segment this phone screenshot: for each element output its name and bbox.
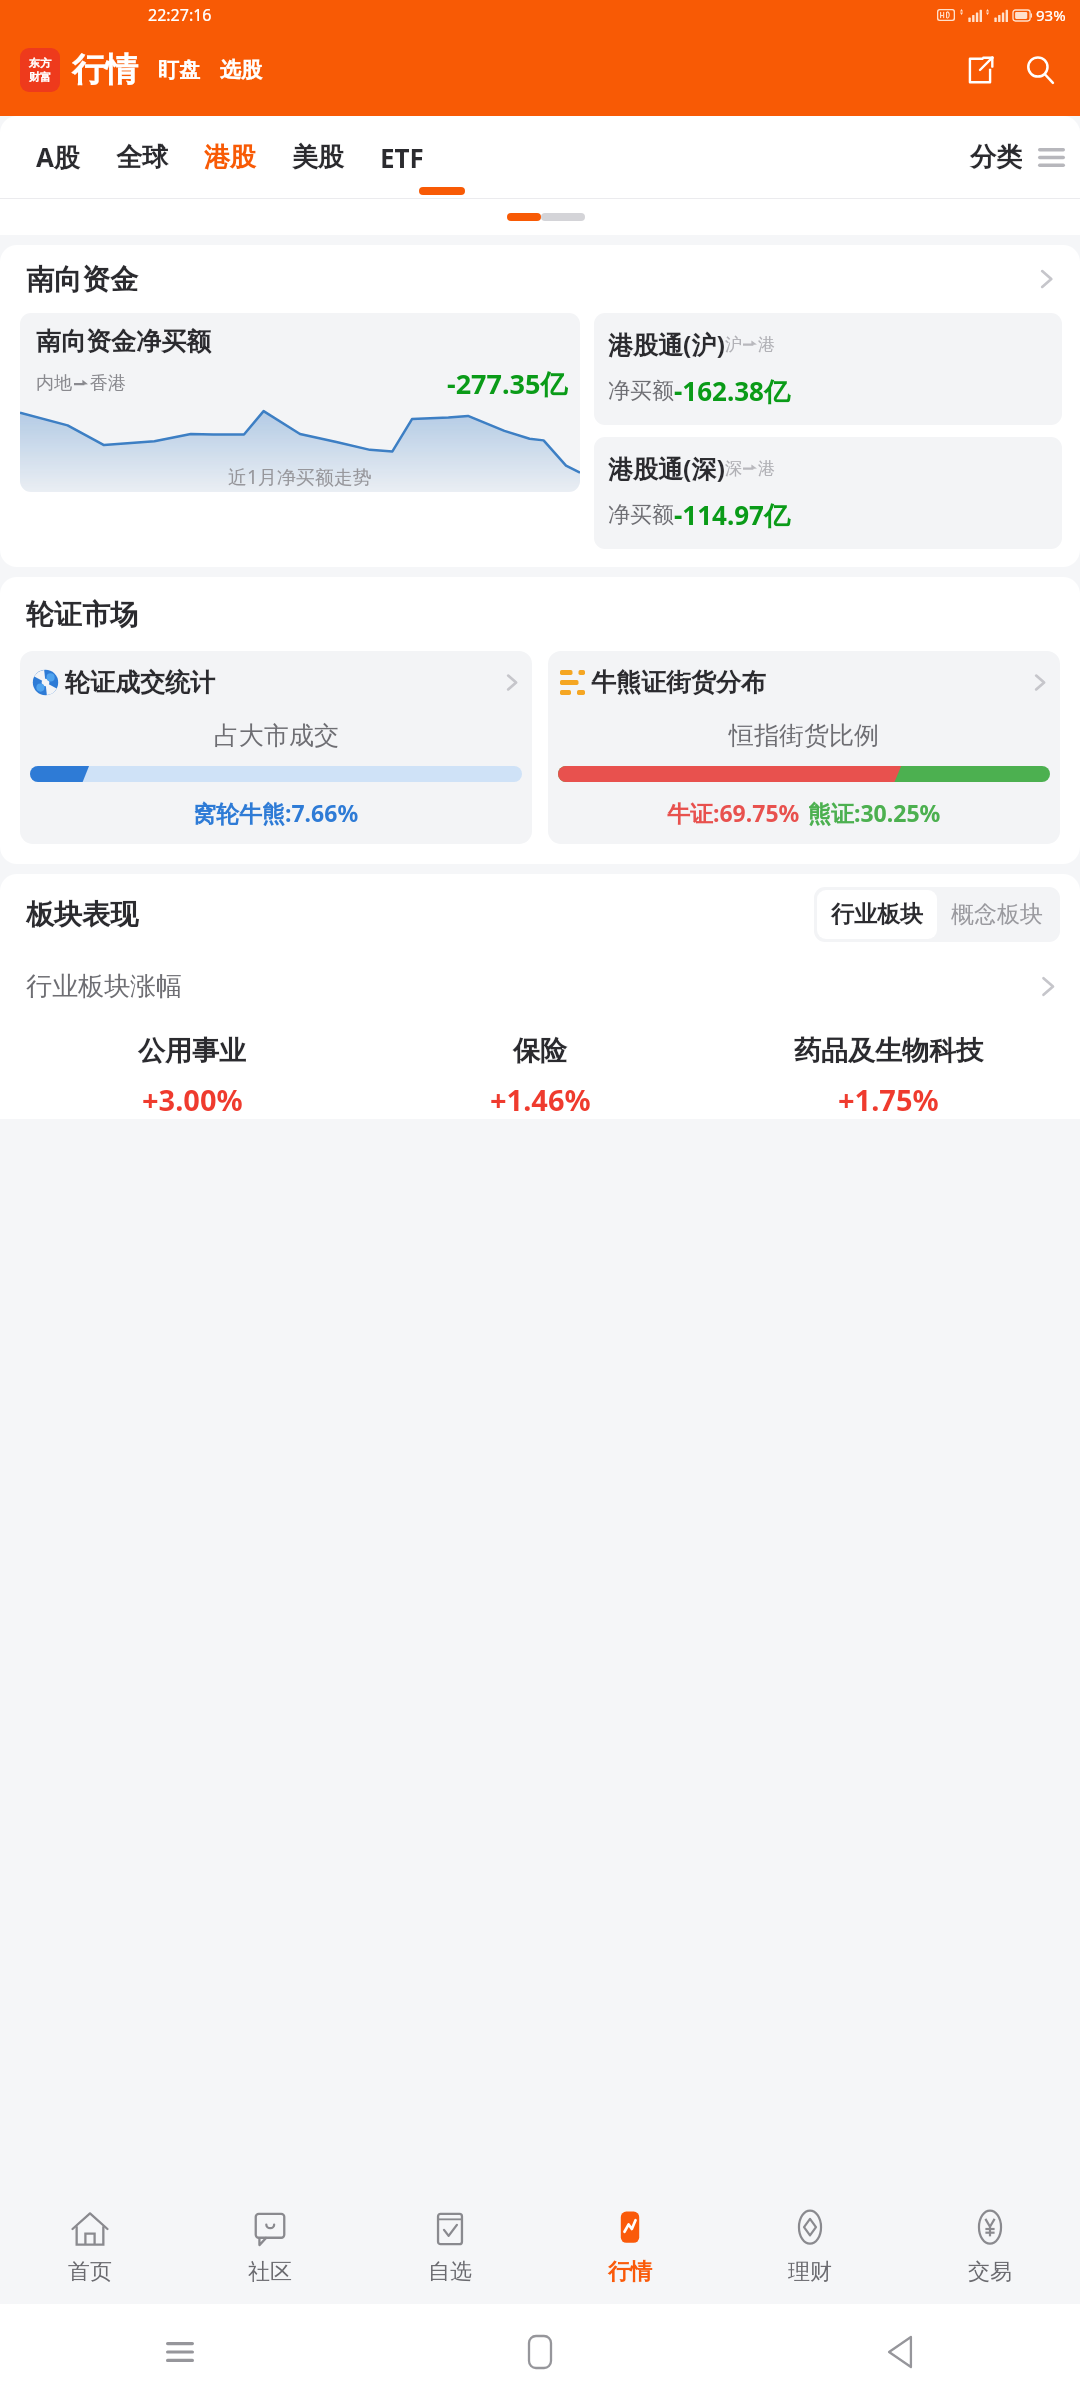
staticText: 南向资金: [26, 262, 138, 297]
staticText: -277.35亿: [447, 365, 568, 402]
staticText: +1.46%: [490, 1080, 591, 1119]
staticText: 南向资金净买额: [36, 326, 211, 357]
button[interactable]: 东方: [20, 48, 60, 92]
staticText: 轮证市场: [26, 597, 138, 632]
staticText: 占大市成交: [214, 720, 339, 751]
staticText: 行情: [72, 49, 138, 91]
staticText: 内地: [36, 372, 72, 395]
button[interactable]: 港股: [204, 141, 256, 174]
staticText: ETF: [380, 140, 424, 175]
staticText: 港股: [204, 141, 256, 174]
staticText: 板块表现: [26, 897, 138, 932]
button[interactable]: A股: [36, 139, 80, 175]
staticText: 分类: [970, 141, 1022, 174]
staticText: 保险: [513, 1034, 567, 1068]
staticText: 公用事业: [138, 1034, 246, 1068]
staticText: 东方: [29, 56, 51, 70]
button[interactable]: 港股通(沪): [594, 313, 1062, 425]
staticText: 香港: [90, 372, 126, 395]
staticText: 净买额: [608, 501, 674, 529]
button[interactable]: Recents: [0, 2304, 360, 2400]
staticText: 概念板块: [951, 900, 1043, 929]
staticText: 美股: [292, 141, 344, 174]
button[interactable]: 保险: [366, 1034, 714, 1119]
staticText: 港股通(深): [608, 451, 725, 485]
staticText: 港: [758, 334, 775, 355]
staticText: 财富: [29, 70, 51, 84]
staticText: 行情: [608, 2258, 652, 2286]
staticText: 行业板块: [831, 900, 923, 929]
button[interactable]: 药品及生物科技: [714, 1034, 1062, 1119]
button[interactable]: Search: [1016, 46, 1064, 94]
staticText: -114.97亿: [674, 497, 790, 533]
button[interactable]: 自选: [360, 2188, 540, 2304]
staticText: 社区: [248, 2258, 292, 2286]
button[interactable]: 港股通(深): [594, 437, 1062, 549]
staticText: 熊证:30.25%: [808, 797, 941, 828]
staticText: 牛熊证街货分布: [591, 667, 766, 698]
staticText: 行业板块涨幅: [26, 970, 182, 1003]
button[interactable]: 轮证成交统计: [20, 651, 532, 844]
button[interactable]: 牛熊证街货分布: [548, 651, 1060, 844]
button[interactable]: 首页: [0, 2188, 180, 2304]
staticText: 牛证:69.75%: [667, 797, 800, 828]
staticText: 净买额: [608, 377, 674, 405]
staticText: -162.38亿: [674, 373, 790, 409]
button[interactable]: 交易: [900, 2188, 1080, 2304]
button[interactable]: 南向资金净买额: [20, 313, 580, 492]
button[interactable]: 全球: [116, 141, 168, 174]
staticText: +3.00%: [142, 1080, 243, 1119]
button[interactable]: Home: [360, 2304, 720, 2400]
staticText: +1.75%: [838, 1080, 939, 1119]
button[interactable]: 盯盘: [158, 57, 200, 83]
button[interactable]: 社区: [180, 2188, 360, 2304]
staticText: 交易: [968, 2258, 1012, 2286]
staticText: 港: [758, 458, 775, 479]
button[interactable]: 行情: [72, 49, 138, 91]
staticText: 药品及生物科技: [794, 1034, 983, 1068]
button[interactable]: Back: [720, 2304, 1080, 2400]
staticText: 港股通(沪): [608, 327, 725, 361]
button[interactable]: 选股: [220, 57, 262, 83]
button[interactable]: 公用事业: [18, 1034, 366, 1119]
staticText: 选股: [220, 57, 262, 83]
staticText: 沪: [725, 334, 742, 355]
staticText: 近1月净买额走势: [228, 464, 372, 490]
staticText: 深: [725, 458, 742, 479]
staticText: 盯盘: [158, 57, 200, 83]
staticText: 理财: [788, 2258, 832, 2286]
button[interactable]: 概念板块: [937, 890, 1057, 939]
staticText: A股: [36, 139, 80, 175]
staticText: 93%: [1036, 5, 1066, 25]
staticText: 自选: [428, 2258, 472, 2286]
staticText: 轮证成交统计: [65, 667, 215, 698]
staticText: 恒指街货比例: [729, 720, 879, 751]
staticText: 22:27:16: [148, 4, 212, 26]
button[interactable]: 分类: [970, 141, 1022, 174]
staticText: 首页: [68, 2258, 112, 2286]
button[interactable]: All categories: [1022, 128, 1080, 186]
button[interactable]: 行业板块: [817, 890, 937, 939]
staticText: 全球: [116, 141, 168, 174]
button[interactable]: 南向资金: [0, 245, 1080, 313]
staticText: 窝轮牛熊:7.66%: [193, 797, 359, 828]
button[interactable]: ETF: [380, 140, 424, 175]
button[interactable]: 理财: [720, 2188, 900, 2304]
button[interactable]: Share: [956, 46, 1004, 94]
button[interactable]: 行情: [540, 2188, 720, 2304]
button[interactable]: 行业板块涨幅: [0, 954, 1080, 1018]
button[interactable]: 美股: [292, 141, 344, 174]
